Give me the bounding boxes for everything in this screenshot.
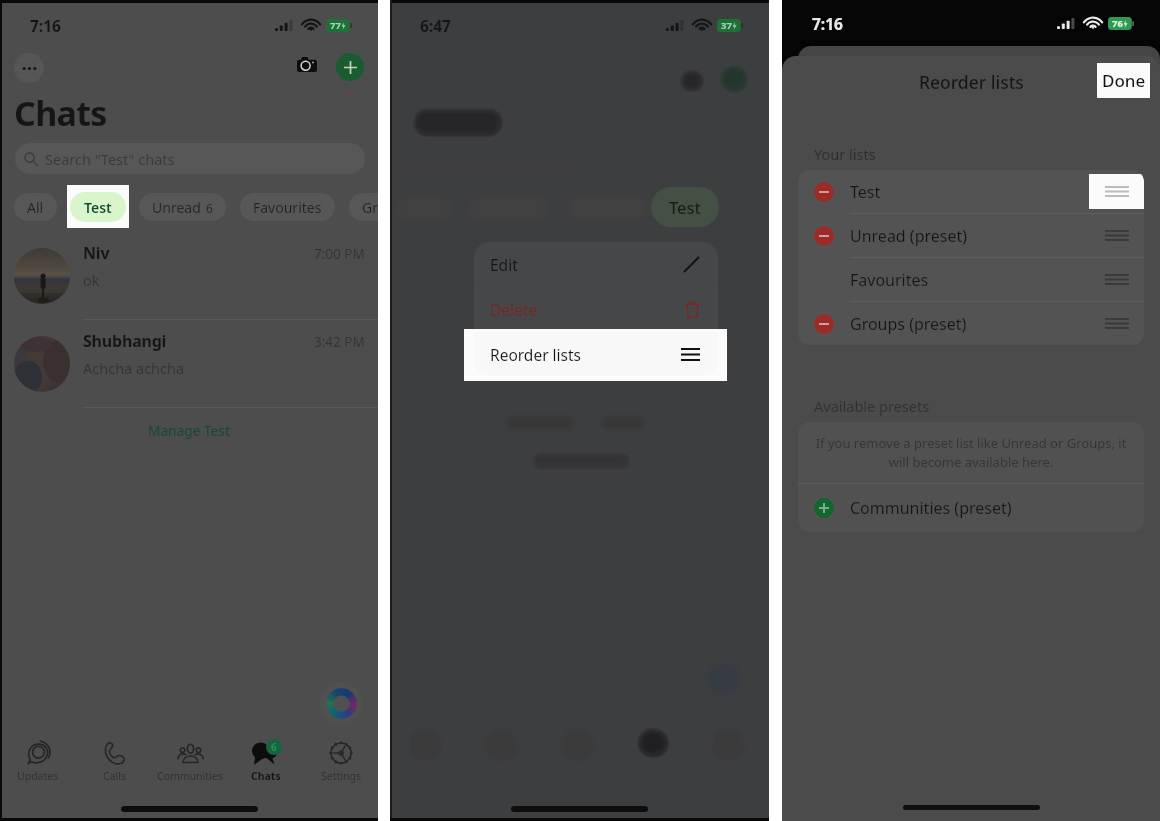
button[interactable]: Unread (preset) (798, 214, 1144, 257)
staticText: Niv (83, 242, 110, 264)
button[interactable]: Reorder lists (474, 332, 718, 376)
staticText: 77 (330, 19, 341, 32)
button[interactable]: Settings (304, 737, 378, 785)
button[interactable]: Delete (474, 287, 718, 331)
staticText: 3:42 PM (314, 333, 365, 351)
staticText: Achcha achcha (83, 358, 185, 378)
button[interactable]: Unread (139, 193, 226, 221)
button[interactable]: Niv (0, 232, 378, 319)
staticText: ok (83, 270, 100, 290)
staticText: Your lists (814, 144, 876, 164)
button[interactable]: Shubhangi (0, 320, 378, 407)
button[interactable]: Test (651, 187, 719, 227)
staticText: 7:16 (812, 13, 843, 34)
button[interactable]: Meta AI (320, 682, 362, 724)
button[interactable]: Manage Test (144, 418, 235, 444)
button[interactable]: Groups (preset) (798, 302, 1144, 345)
staticText: Available presets (814, 396, 930, 416)
button[interactable]: Test (798, 170, 1144, 213)
staticText: Groups (362, 198, 378, 217)
staticText: All (27, 198, 44, 217)
button[interactable]: Done (1097, 63, 1150, 98)
staticText: 6 (206, 200, 213, 216)
staticText: Reorder lists (490, 344, 582, 365)
staticText: Done (1102, 69, 1146, 92)
staticText: 7:16 (30, 15, 61, 36)
staticText: 6 (271, 740, 277, 754)
button[interactable]: Groups (349, 193, 378, 221)
button[interactable]: Search "Test" chats (15, 143, 365, 174)
button[interactable]: Communities (152, 737, 228, 785)
staticText: Chats (251, 769, 281, 783)
staticText: 7:00 PM (314, 245, 365, 263)
staticText: Test (84, 198, 112, 217)
button[interactable]: Communities (preset) (798, 484, 1144, 532)
staticText: Search "Test" chats (45, 149, 175, 169)
staticText: 6:47 (420, 15, 451, 36)
staticText: Favourites (850, 269, 929, 291)
staticText: Test (669, 196, 701, 218)
staticText: Delete (490, 299, 538, 320)
staticText: Communities (157, 769, 223, 783)
staticText: Test (850, 181, 881, 203)
button[interactable]: More options (14, 53, 44, 83)
button[interactable]: Favourites (798, 258, 1144, 301)
staticText: Shubhangi (83, 330, 167, 352)
button[interactable]: Favourites (240, 193, 335, 221)
button[interactable]: 6 (228, 737, 304, 785)
button[interactable]: All (14, 193, 57, 221)
staticText: 37 (721, 19, 732, 32)
button[interactable]: Camera (293, 52, 321, 76)
staticText: Favourites (253, 198, 322, 217)
button[interactable]: Edit (474, 242, 718, 286)
staticText: Groups (preset) (850, 313, 967, 335)
staticText: Unread (152, 198, 201, 217)
staticText: Settings (321, 769, 361, 783)
button[interactable]: Calls (76, 737, 152, 785)
staticText: Unread (preset) (850, 225, 968, 247)
staticText: Edit (490, 254, 518, 275)
staticText: Chats (14, 90, 107, 136)
staticText: 76 (1112, 17, 1123, 30)
staticText: Reorder lists (919, 70, 1024, 94)
button[interactable]: New chat (336, 53, 364, 81)
staticText: Communities (preset) (850, 497, 1012, 519)
staticText: Updates (17, 769, 59, 783)
staticText: If you remove a preset list like Unread … (812, 434, 1130, 471)
button[interactable]: Test (70, 192, 126, 222)
button[interactable]: Updates (0, 737, 76, 785)
staticText: Calls (103, 769, 126, 783)
